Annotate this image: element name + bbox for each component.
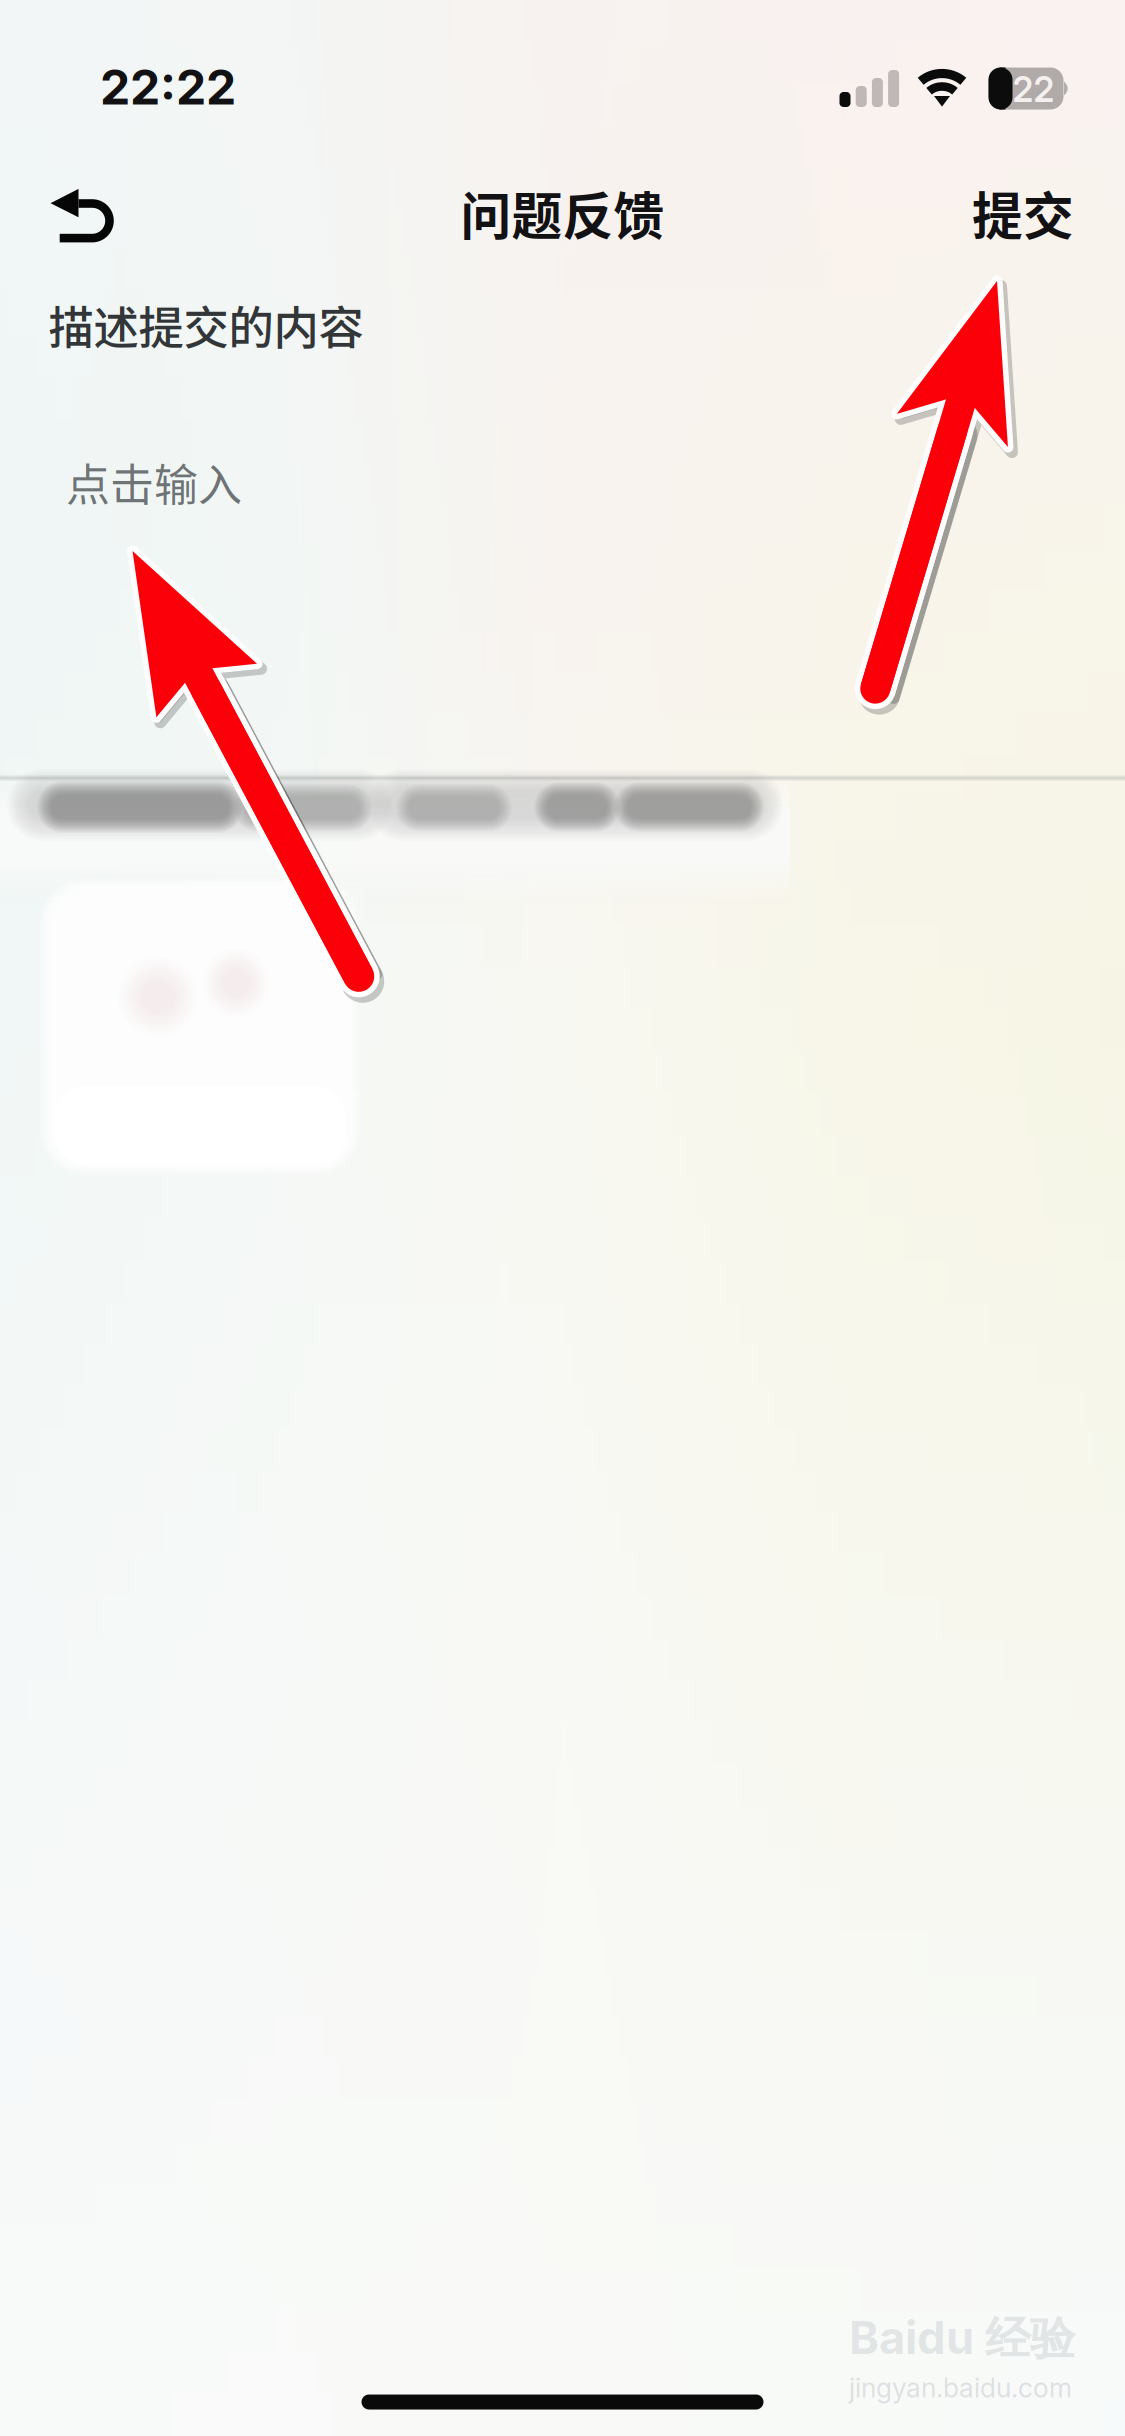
staticText: jingyan.baidu.com bbox=[849, 2372, 1072, 2404]
button[interactable]: 提交 bbox=[938, 158, 1108, 268]
staticText: Baidu 经验 bbox=[849, 2310, 1075, 2368]
staticText: 22 bbox=[1012, 68, 1054, 110]
staticText: 点击输入 bbox=[66, 450, 242, 514]
button[interactable]: 返回 bbox=[3, 154, 153, 270]
staticText: 22:22 bbox=[100, 58, 236, 116]
button[interactable]: 点击输入 bbox=[66, 422, 1095, 542]
staticText: 问题反馈 bbox=[460, 176, 664, 250]
staticText: 描述提交的内容 bbox=[48, 292, 363, 358]
staticText: 提交 bbox=[972, 176, 1074, 250]
